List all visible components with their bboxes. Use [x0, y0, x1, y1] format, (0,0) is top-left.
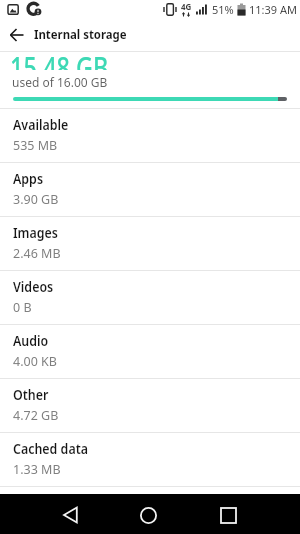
button[interactable]: Apps: [0, 163, 300, 216]
staticText: Apps: [13, 170, 43, 188]
staticText: used of 16.00 GB: [12, 74, 108, 89]
staticText: Cached data: [13, 440, 88, 458]
staticText: 1.33 MB: [13, 461, 61, 478]
button[interactable]: Cached data: [0, 433, 300, 486]
staticText: 0 B: [13, 299, 32, 316]
staticText: 3.90 GB: [13, 191, 59, 208]
staticText: 4G: [181, 1, 192, 12]
staticText: Available: [13, 116, 69, 134]
staticText: 15.48 GB: [10, 52, 109, 70]
button[interactable]: Other: [0, 379, 300, 432]
button[interactable]: Images: [0, 217, 300, 270]
staticText: 4.72 GB: [13, 407, 59, 424]
staticText: 11:39 AM: [249, 2, 297, 17]
button[interactable]: Videos: [0, 271, 300, 324]
staticText: 51%: [212, 2, 234, 17]
staticText: 2.46 MB: [13, 245, 61, 262]
staticText: Internal storage: [34, 26, 127, 43]
button[interactable]: Available: [0, 109, 300, 162]
staticText: 4.00 KB: [13, 353, 57, 370]
button[interactable]: Audio: [0, 325, 300, 378]
staticText: Audio: [13, 332, 49, 350]
button[interactable]: [220, 507, 237, 524]
button[interactable]: [140, 507, 157, 524]
staticText: Images: [13, 224, 58, 242]
staticText: Videos: [13, 278, 53, 296]
button[interactable]: [63, 506, 79, 524]
staticText: Other: [13, 386, 49, 404]
button[interactable]: [0, 18, 34, 51]
staticText: 535 MB: [13, 137, 58, 154]
